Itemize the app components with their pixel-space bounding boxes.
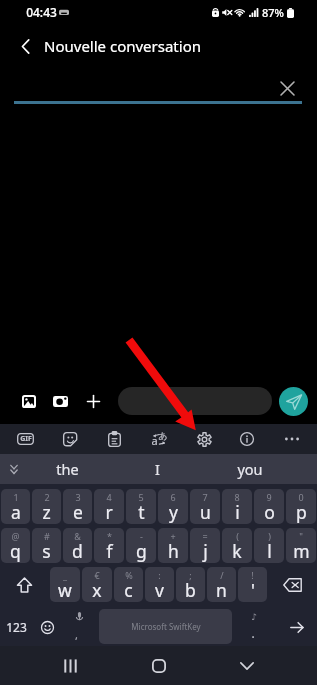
button[interactable]: 2 [32,489,61,524]
staticText: x [92,578,102,602]
button[interactable]: Voice input [64,609,94,644]
button[interactable]: I [115,454,199,484]
button[interactable]: the [25,454,109,484]
button[interactable]: Numbers and symbols [0,609,33,644]
button[interactable]: * [94,528,124,563]
staticText: # [44,530,50,542]
staticText: z [42,500,51,524]
staticText: , [75,627,78,642]
button[interactable]: @ [1,528,30,563]
staticText: + [170,530,176,542]
button[interactable]: Enter [277,609,317,644]
button[interactable]: Send [279,387,308,416]
button[interactable]: & [63,528,92,563]
staticText: t [138,500,145,524]
staticText: ' [251,578,255,602]
staticText: = [202,530,208,542]
staticText: % [125,569,133,581]
button[interactable]: Gallery [15,387,43,415]
button[interactable]: ; [176,567,205,602]
button[interactable]: ! [238,567,267,602]
staticText: € [94,569,100,581]
staticText: 6 [170,491,176,503]
button[interactable]: you [208,454,292,484]
staticText: ! [251,569,254,581]
button[interactable]: ( [222,528,252,563]
button[interactable]: € [82,567,112,602]
staticText: n [216,578,227,602]
staticText: w [58,578,72,602]
button[interactable]: + [158,528,188,563]
button[interactable]: / [207,567,236,602]
staticText: ; [189,569,192,581]
staticText: 1 [13,491,19,503]
button[interactable]: Clear recipient [269,70,305,106]
button[interactable]: - [126,528,156,563]
button[interactable]: Clipboard [99,424,129,454]
button[interactable]: Back [0,24,42,68]
button[interactable]: Shift [0,567,49,602]
staticText: あ [158,430,168,441]
staticText: g [136,539,147,563]
staticText: j [203,539,208,563]
staticText: f [106,539,113,563]
staticText: v [155,578,164,602]
button[interactable]: Translate [144,424,174,454]
staticText: : [158,569,161,581]
button[interactable]: _ [50,567,80,602]
button[interactable]: = [190,528,220,563]
staticText: 0 [298,491,304,503]
button[interactable]: 3 [63,489,92,524]
staticText: 5 [138,491,144,503]
button[interactable]: 0 [286,489,316,524]
button[interactable]: 5 [126,489,156,524]
staticText: 4 [106,491,112,503]
staticText: 123 [6,619,27,635]
staticText: r [105,500,113,524]
button[interactable]: Punctuation [238,609,269,644]
staticText: d [72,539,83,563]
staticText: GIF [20,434,32,444]
button[interactable]: Camera [46,387,74,415]
button[interactable]: Microsoft SwiftKey [99,609,232,644]
staticText: & [74,530,81,542]
staticText: Microsoft SwiftKey [131,621,201,632]
staticText: 87% [262,5,284,20]
button[interactable]: Stickers [55,424,85,454]
button[interactable]: 8 [222,489,252,524]
button[interactable]: Expand suggestions [0,456,27,483]
button[interactable]: Settings [189,424,219,454]
staticText: l [267,539,272,563]
staticText: h [168,539,179,563]
button[interactable]: Home [137,646,181,685]
button[interactable]: Add attachment [79,387,107,415]
button[interactable]: Back [225,646,269,685]
button[interactable]: More options [277,424,307,454]
button[interactable]: 7 [190,489,220,524]
staticText: 04:43 [26,4,57,20]
staticText: @ [11,530,20,542]
button[interactable]: Backspace [268,567,317,602]
staticText: ♪ [251,612,257,622]
button[interactable]: Emoji [33,609,62,644]
button[interactable]: 4 [94,489,124,524]
button[interactable]: % [114,567,143,602]
staticText: ) [268,530,271,542]
button[interactable] [118,387,272,415]
staticText: y [169,500,178,524]
button[interactable]: Recent apps [48,646,92,685]
button[interactable]: GIF keyboard [10,424,40,454]
button[interactable]: # [32,528,61,563]
staticText: 2 [44,491,50,503]
staticText: k [232,539,242,563]
staticText: you [237,459,263,479]
button[interactable]: Info [232,424,262,454]
button[interactable]: 6 [158,489,188,524]
button[interactable]: 1 [1,489,30,524]
button[interactable]: ) [254,528,284,563]
staticText: " [299,530,303,542]
button[interactable]: : [145,567,174,602]
button[interactable]: " [286,528,316,563]
button[interactable]: 9 [254,489,284,524]
staticText: the [56,459,79,479]
